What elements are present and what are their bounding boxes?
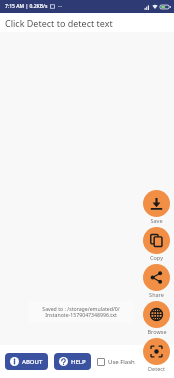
button[interactable]: Copy (143, 227, 170, 261)
staticText: Browse (147, 328, 167, 335)
button[interactable]: Save (143, 190, 170, 224)
staticText: Click Detect to detect text (5, 17, 113, 29)
button[interactable]: Use Flash (97, 358, 135, 366)
staticText: Share (149, 291, 164, 298)
staticText: Use Flash (108, 358, 135, 366)
staticText: 7:15 AM | 0.2KB/s (5, 3, 48, 10)
button[interactable]: HELP (54, 353, 91, 370)
button[interactable]: Detect (143, 338, 170, 372)
button[interactable]: Browse (143, 301, 170, 335)
button[interactable]: Share (143, 264, 170, 298)
staticText: Save (150, 217, 163, 224)
staticText: HELP (71, 358, 86, 366)
staticText: ··· (58, 3, 63, 10)
staticText: Detect (148, 365, 165, 372)
button[interactable]: ABOUT (5, 353, 48, 370)
staticText: Copy (150, 254, 163, 261)
staticText: Saved to : /storage/emulated/0/ Instanot… (42, 305, 120, 319)
staticText: ABOUT (22, 358, 43, 366)
